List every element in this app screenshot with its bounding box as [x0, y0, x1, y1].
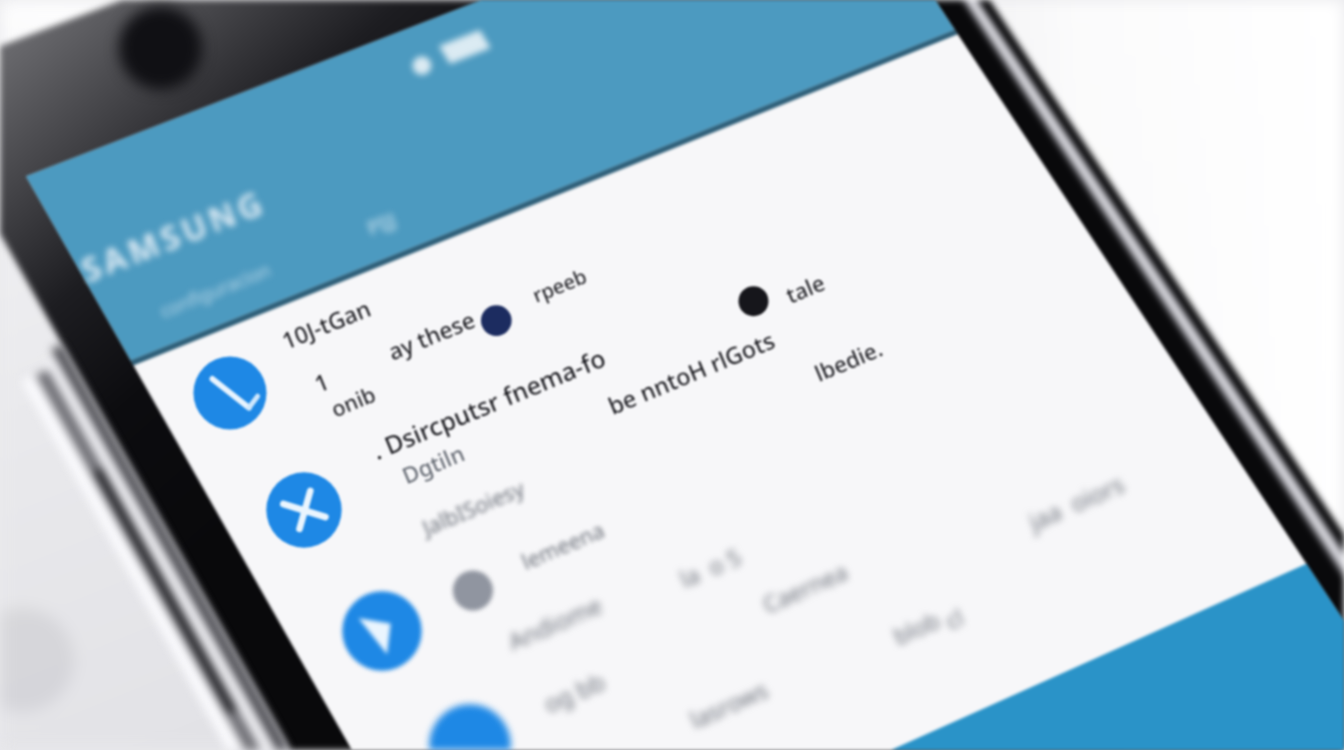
other: Phone showing app screen — [0, 0, 1344, 750]
